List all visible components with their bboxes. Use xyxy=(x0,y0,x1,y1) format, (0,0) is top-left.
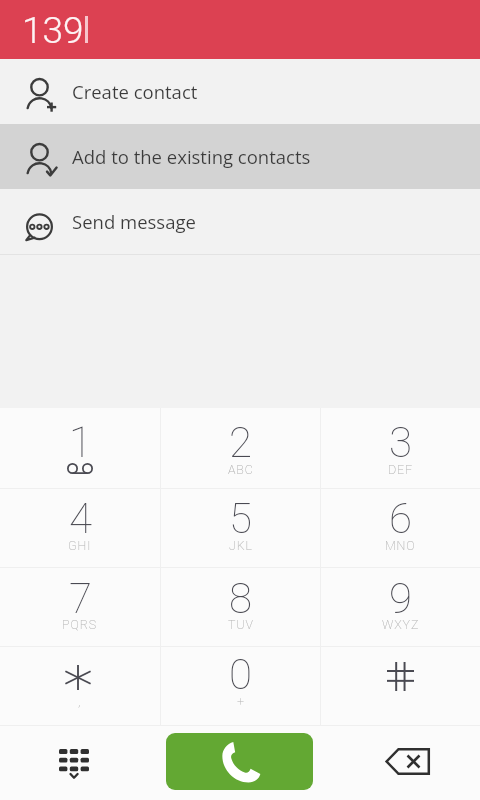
button[interactable]: Add to the existing contacts xyxy=(0,124,480,189)
staticText: 3 xyxy=(389,418,412,467)
button[interactable]: Send message xyxy=(0,189,480,254)
staticText: 4 xyxy=(69,494,92,543)
staticText: , xyxy=(78,694,82,709)
staticText: 7 xyxy=(69,574,92,623)
staticText: Add to the existing contacts xyxy=(72,144,311,169)
button[interactable]: Backspace xyxy=(320,726,480,800)
button[interactable]: Call xyxy=(166,733,313,790)
button[interactable]: 9 xyxy=(321,568,480,646)
button[interactable]: 1 xyxy=(0,408,160,488)
staticText: WXYZ xyxy=(382,617,420,632)
staticText: ABC xyxy=(228,462,254,477)
staticText: DEF xyxy=(388,462,414,477)
button[interactable]: Create contact xyxy=(0,59,480,124)
staticText: TUV xyxy=(228,617,254,632)
button[interactable]: 4 xyxy=(0,489,160,567)
button[interactable] xyxy=(321,647,480,725)
staticText: Create contact xyxy=(72,79,198,104)
staticText: 1 xyxy=(69,418,92,467)
staticText: PQRS xyxy=(62,617,98,632)
staticText: 5 xyxy=(229,494,252,543)
button[interactable]: 2 xyxy=(161,408,320,488)
staticText: MNO xyxy=(385,538,416,553)
staticText: Send message xyxy=(72,209,196,234)
button[interactable]: Hide keypad xyxy=(0,726,160,800)
staticText: 2 xyxy=(229,418,252,467)
staticText: 6 xyxy=(389,494,412,543)
staticText: 139 xyxy=(22,9,84,52)
staticText: 8 xyxy=(229,574,252,623)
button[interactable]: 8 xyxy=(161,568,320,646)
button[interactable]: 3 xyxy=(321,408,480,488)
button[interactable]: 6 xyxy=(321,489,480,567)
button[interactable]: 7 xyxy=(0,568,160,646)
staticText: 0 xyxy=(229,650,252,699)
button[interactable]: 0 xyxy=(161,647,320,725)
staticText: 9 xyxy=(389,574,412,623)
button[interactable]: 5 xyxy=(161,489,320,567)
staticText: + xyxy=(237,694,245,709)
staticText: GHI xyxy=(68,538,92,553)
button[interactable]: , xyxy=(0,647,160,725)
staticText: JKL xyxy=(229,538,253,553)
